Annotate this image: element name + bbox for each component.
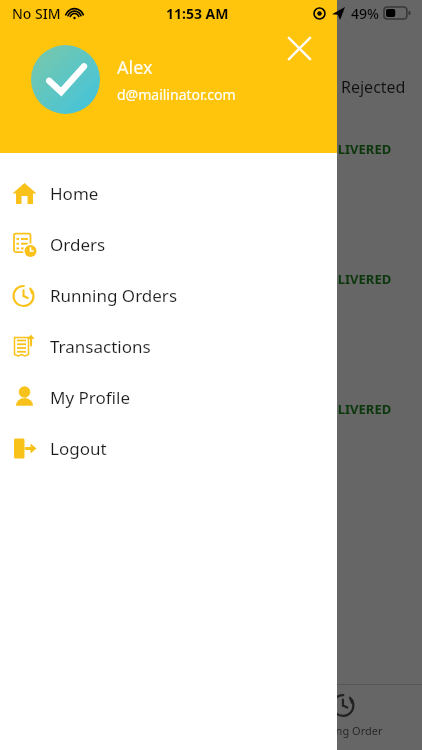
staticText: Transactions [50, 335, 151, 358]
button[interactable]: My Profile [0, 372, 337, 423]
button[interactable]: Running Order [289, 692, 399, 738]
button[interactable]: Order #1204 [16, 126, 406, 242]
staticText: Home [50, 182, 99, 205]
button[interactable]: Home [0, 168, 337, 219]
button[interactable]: Order #1214 [16, 256, 406, 372]
button[interactable]: Transactions [0, 321, 337, 372]
button[interactable]: Running Orders [0, 270, 337, 321]
button[interactable]: Orders [0, 219, 337, 270]
staticText: DELIVERED [321, 270, 392, 288]
staticText: Accepted [60, 76, 341, 98]
staticText: Customer NA [30, 441, 112, 459]
staticText: Orders [50, 233, 106, 256]
staticText: Running Order [289, 723, 399, 738]
staticText: 49% [351, 4, 379, 23]
staticText: Running Orders [50, 284, 178, 307]
staticText: No SIM [12, 4, 61, 23]
button[interactable]: Order #1224 [16, 386, 406, 502]
staticText: Order #1204 [30, 140, 321, 159]
staticText: d@mailinator.com [117, 85, 236, 104]
staticText: Order #1214 [30, 270, 321, 289]
button[interactable]: Close menu [279, 28, 319, 68]
staticText: DELIVERED [321, 140, 392, 158]
staticText: Customer NA [30, 181, 112, 199]
button[interactable]: Logout [0, 423, 337, 474]
staticText: Order #1224 [30, 400, 321, 419]
staticText: Alex [117, 55, 153, 80]
staticText: Rejected [341, 76, 406, 98]
staticText: My Profile [50, 386, 130, 409]
staticText: 11:53 AM [166, 4, 229, 23]
staticText: DELIVERED [321, 400, 392, 418]
staticText: Logout [50, 437, 107, 460]
